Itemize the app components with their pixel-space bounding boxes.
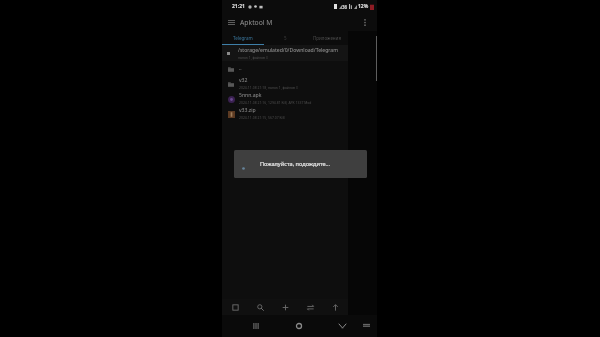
button[interactable]: v33.zip bbox=[222, 106, 348, 121]
button[interactable]: Up one level bbox=[323, 299, 348, 315]
button[interactable]: Show keyboard bbox=[358, 317, 374, 333]
staticText: 12% bbox=[358, 3, 369, 10]
staticText: 5 bbox=[284, 35, 287, 41]
staticText: Telegram bbox=[233, 35, 253, 41]
staticText: Apktool M bbox=[240, 18, 273, 27]
staticText: v33.zip bbox=[239, 107, 256, 114]
button[interactable]: Open navigation menu bbox=[222, 13, 240, 31]
staticText: Пожалуйста, подождите... bbox=[260, 160, 331, 168]
button[interactable]: More options bbox=[356, 13, 374, 31]
button[interactable]: Create bbox=[273, 299, 298, 315]
staticText: 2024-11-08 21:15, 567.07 KiB bbox=[239, 115, 285, 120]
staticText: папок 1, файлов 3 bbox=[238, 55, 268, 60]
button[interactable]: Telegram bbox=[222, 31, 264, 45]
staticText: 2024-11-08 21:18, папок 1, файлов 3 bbox=[239, 85, 298, 90]
button[interactable]: /storage/emulated/0/Download/Telegram bbox=[222, 45, 348, 61]
staticText: /storage/emulated/0/Download/Telegram bbox=[238, 47, 338, 54]
button[interactable]: Приложения bbox=[306, 31, 348, 45]
button[interactable]: Пожалуйста, подождите... bbox=[234, 150, 367, 178]
staticText: .. bbox=[239, 65, 242, 72]
button[interactable]: Sort bbox=[298, 299, 323, 315]
button[interactable]: .. bbox=[222, 61, 348, 76]
staticText: 36 bbox=[342, 4, 348, 10]
button[interactable]: Search bbox=[248, 299, 273, 315]
button[interactable]: v32 bbox=[222, 76, 348, 91]
button[interactable]: Home bbox=[290, 317, 308, 335]
button[interactable]: Back bbox=[333, 317, 351, 335]
staticText: 5nnn.apk bbox=[239, 92, 262, 99]
staticText: Приложения bbox=[313, 35, 342, 41]
staticText: 2024-11-08 21:16, 1294.81 KiB, APK 1337 … bbox=[239, 100, 312, 105]
button[interactable]: Recent apps bbox=[247, 317, 265, 335]
staticText: v32 bbox=[239, 77, 248, 84]
button[interactable]: 5nnn.apk bbox=[222, 91, 348, 106]
staticText: 21:21 bbox=[232, 3, 245, 10]
button[interactable]: Select bbox=[222, 299, 248, 315]
